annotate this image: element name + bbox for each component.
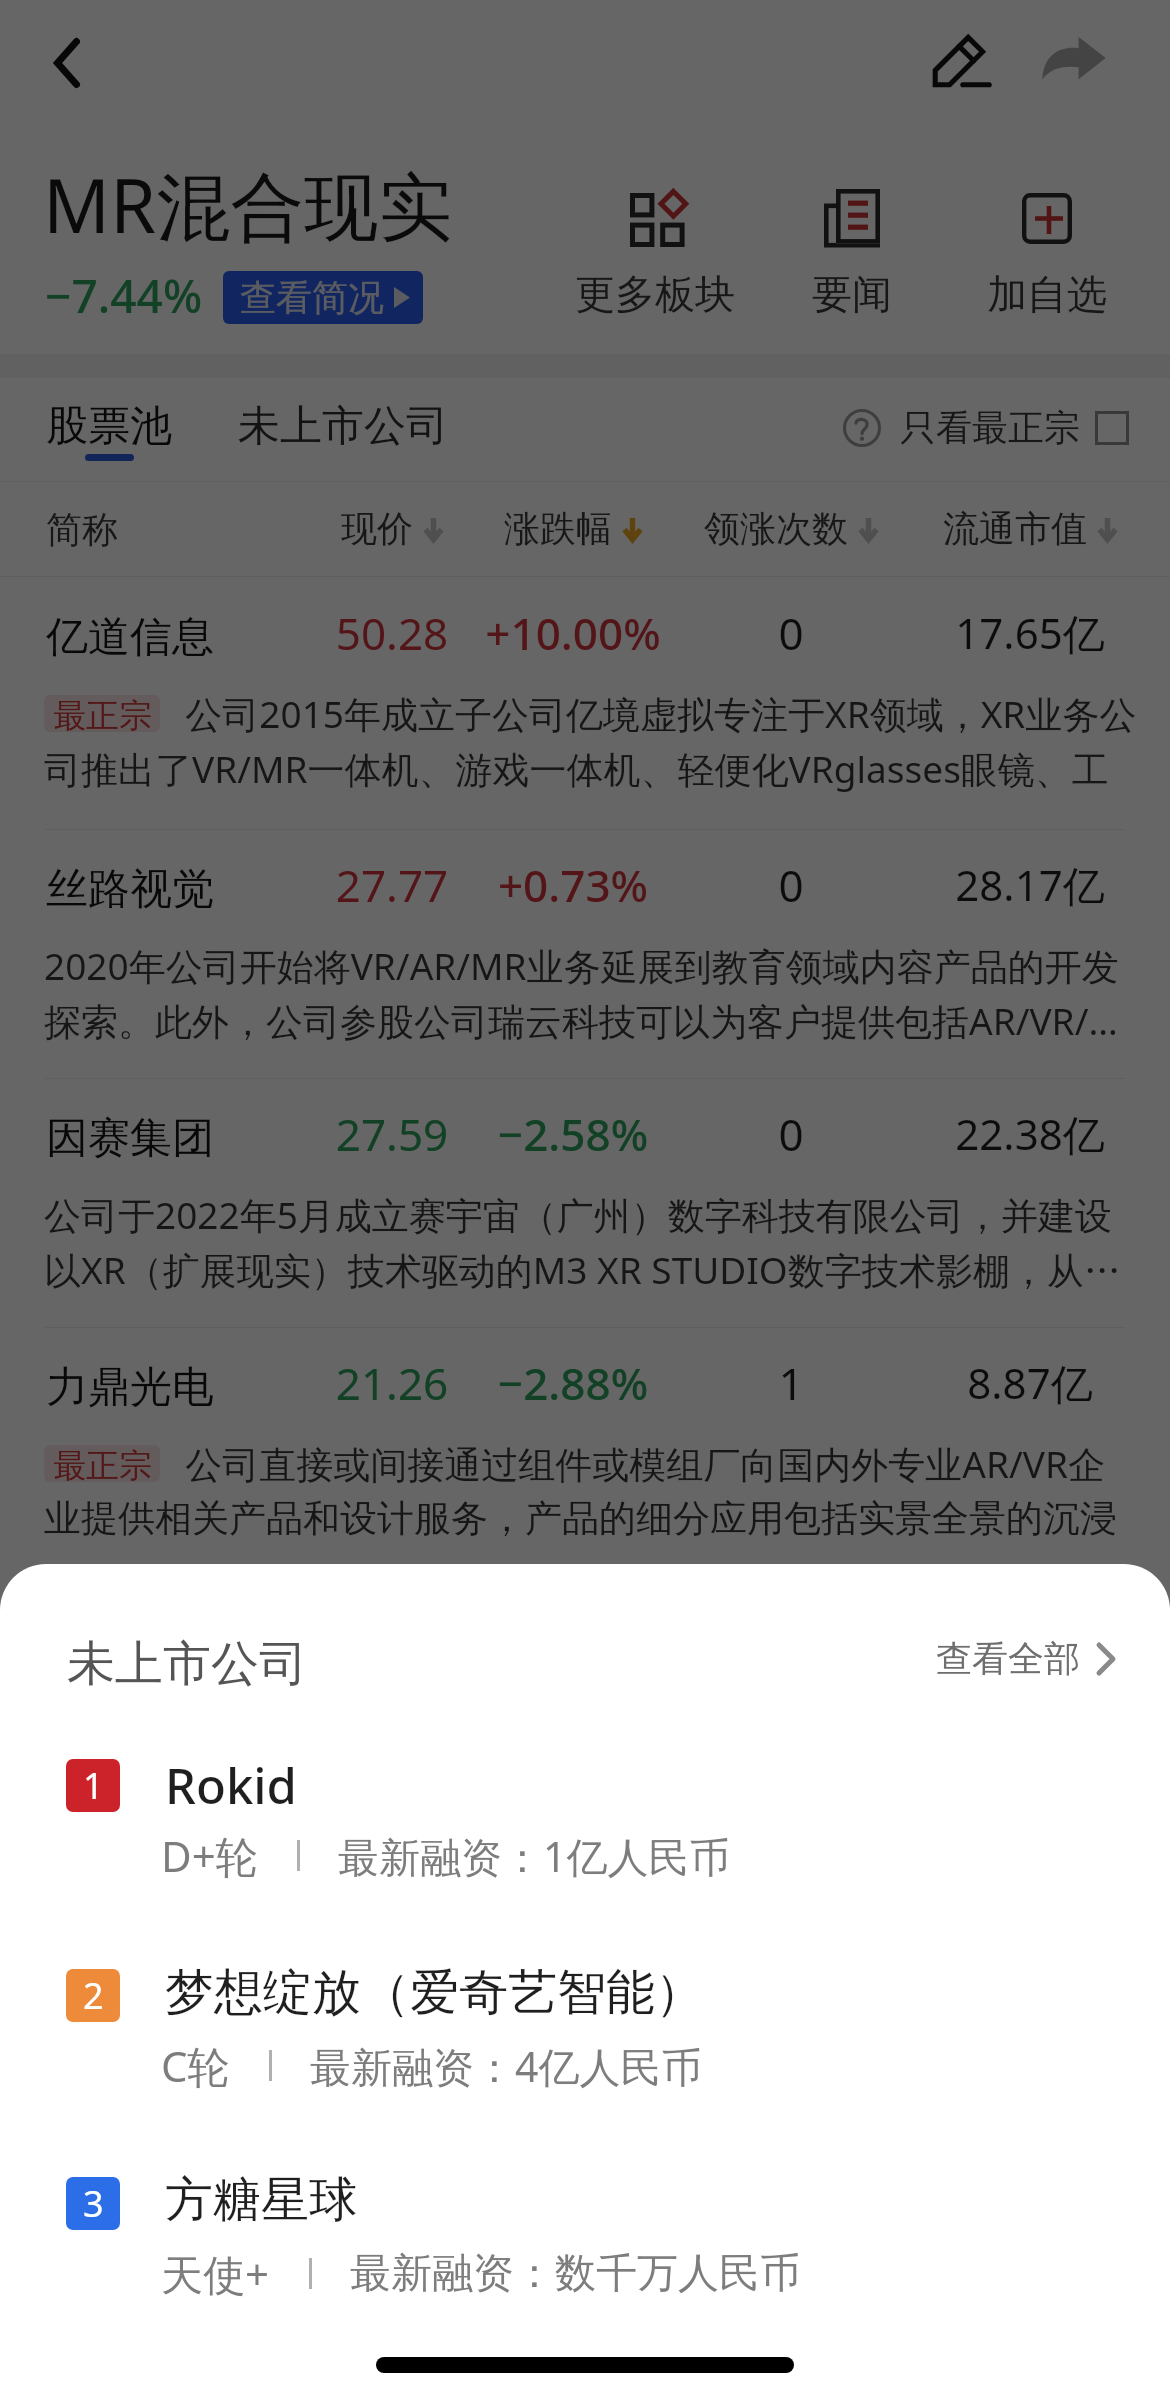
button[interactable]: 领涨次数 [641,498,941,559]
button[interactable]: 流通市值 [880,498,1170,559]
staticText: 查看简况 [240,275,384,320]
staticText: 未上市公司 [67,1634,307,1694]
staticText: 21.26 [192,1353,592,1413]
staticText: 1 [591,1353,991,1413]
staticText: 因赛集团 [46,1112,214,1165]
staticText: 加自选 [987,269,1107,319]
button[interactable]: 现价 [242,498,542,559]
button[interactable]: 丝路视觉 [0,829,1170,1079]
staticText: 最正宗 [53,695,152,732]
staticText: Rokid [165,1752,297,1819]
staticText: 2 [83,1971,104,2020]
staticText: 公司于2022年5月成立赛宇宙（广州）数字科技有限公司，并建设以XR（扩展现实）… [44,1189,1140,1295]
staticText: 更多板块 [575,269,735,319]
button[interactable]: 股票池 [21,388,197,473]
staticText: 简称 [46,507,118,552]
button[interactable]: 亿道信息 [0,577,1170,830]
staticText: 2020年公司开始将VR/AR/MR业务延展到教育领域内容产品的开发探索。此外，… [44,940,1140,1046]
button[interactable]: 2 [0,1953,1170,2113]
staticText: [最正宗]公司2015年成立子公司亿境虚拟专注于XR领域，XR业务公司推出了VR… [44,688,1140,794]
staticText: [最正宗]公司直接或间接通过组件或模组厂向国内外专业AR/VR企业提供相关产品和… [44,1438,1140,1542]
staticText: 最新融资：1亿人民币 [338,1828,731,1884]
staticText: MR混合现实 [43,154,453,255]
staticText: 最新融资：数千万人民币 [350,2248,801,2300]
staticText: 未上市公司 [238,400,448,453]
staticText: 0 [591,855,991,915]
staticText: 3 [83,2179,104,2228]
staticText: 天使+ [161,2245,270,2302]
staticText: 现价 [341,506,413,551]
staticText: 只看最正宗 [900,405,1080,450]
staticText: 50.28 [192,603,592,663]
button[interactable]: Share [1029,17,1119,107]
staticText: 力鼎光电 [46,1361,214,1414]
staticText: 涨跌幅 [504,506,612,551]
staticText: −2.88% [373,1353,773,1413]
staticText: 28.17亿 [830,856,1170,913]
staticText: 1 [83,1761,104,1810]
button[interactable]: 查看全部 [918,1618,1134,1699]
button[interactable]: 3 [0,2161,1170,2321]
button[interactable]: 涨跌幅 [423,498,723,559]
staticText: 领涨次数 [704,506,848,551]
staticText: 0 [591,603,991,663]
staticText: 亿道信息 [46,611,214,664]
staticText: 股票池 [46,400,172,453]
staticText: 最正宗 [53,1445,152,1482]
staticText: 查看全部 [936,1636,1080,1681]
button[interactable]: 查看简况 [223,271,423,324]
staticText: 丝路视觉 [46,863,214,916]
staticText: 0 [591,1104,991,1164]
staticText: +10.00% [373,603,773,663]
staticText: +0.73% [373,855,773,915]
staticText: 22.38亿 [830,1105,1170,1162]
staticText: C轮 [161,2037,230,2094]
staticText: D+轮 [161,1827,258,1884]
button[interactable]: 更多板块 [557,175,753,315]
staticText: 27.59 [192,1104,592,1164]
button[interactable]: Edit [916,17,1006,107]
button[interactable]: 未上市公司 [213,388,473,465]
staticText: 梦想绽放（爱奇艺智能） [165,1962,704,2024]
button[interactable]: 加自选 [949,175,1145,315]
button[interactable]: 只看最正宗 [823,393,1149,462]
button[interactable]: 1 [0,1743,1170,1903]
staticText: 方糖星球 [165,2170,357,2230]
staticText: −7.44% [45,264,203,327]
staticText: 最新融资：4亿人民币 [310,2038,703,2094]
staticText: 流通市值 [943,506,1087,551]
button[interactable]: 因赛集团 [0,1078,1170,1328]
staticText: 27.77 [192,855,592,915]
staticText: −2.58% [373,1104,773,1164]
staticText: 17.65亿 [830,604,1170,661]
staticText: 要闻 [812,269,892,319]
staticText: 8.87亿 [830,1354,1170,1411]
button[interactable]: Back [22,18,112,108]
button[interactable]: 力鼎光电 [0,1327,1170,1577]
button[interactable]: 要闻 [754,175,950,315]
